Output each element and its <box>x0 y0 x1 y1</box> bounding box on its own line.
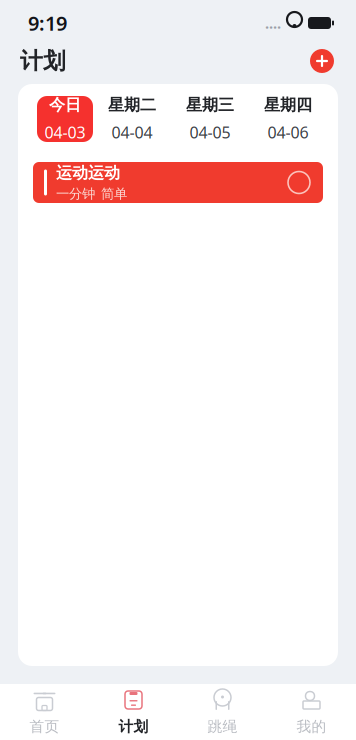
staticText: 04-04 <box>111 122 152 143</box>
button[interactable]: 运动运动 <box>33 162 323 203</box>
button[interactable]: 添加计划 <box>305 44 339 78</box>
staticText: 首页 <box>29 717 59 735</box>
staticText: 04-06 <box>267 122 308 143</box>
button[interactable]: 计划 <box>89 684 178 740</box>
button[interactable]: 星期二 <box>93 96 171 142</box>
staticText: 运动运动 <box>56 163 120 183</box>
staticText: .... <box>265 13 281 33</box>
staticText: 简单 <box>101 186 127 202</box>
button[interactable]: 今日 <box>37 96 93 142</box>
staticText: 今日 <box>49 95 81 115</box>
staticText: 星期二 <box>108 95 156 115</box>
staticText: 跳绳 <box>207 717 237 735</box>
staticText: 计划 <box>118 717 148 735</box>
button[interactable]: 星期四 <box>249 96 327 142</box>
staticText: 一分钟 <box>56 186 95 202</box>
staticText: 星期四 <box>264 95 312 115</box>
button[interactable]: 首页 <box>0 684 89 740</box>
button[interactable]: 星期三 <box>171 96 249 142</box>
button[interactable]: 跳绳 <box>178 684 267 740</box>
staticText: 04-05 <box>189 122 230 143</box>
staticText: 星期三 <box>186 95 234 115</box>
staticText: 我的 <box>296 717 326 735</box>
staticText: 04-03 <box>44 122 85 143</box>
button[interactable]: 我的 <box>267 684 356 740</box>
staticText: 9:19 <box>28 10 67 36</box>
staticText: 计划 <box>20 47 66 75</box>
